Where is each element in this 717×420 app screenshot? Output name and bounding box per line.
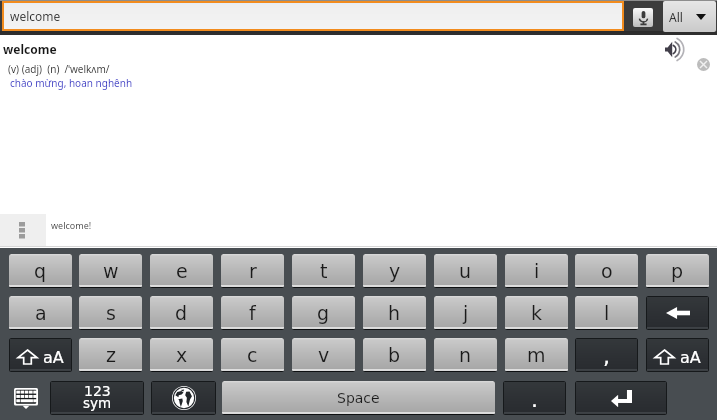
button[interactable]: Hide keyboard <box>4 381 48 415</box>
button[interactable]: x <box>150 338 213 371</box>
staticText: l <box>604 302 610 324</box>
other: Switch language <box>172 386 196 410</box>
button[interactable]: Switch language <box>152 382 215 414</box>
button[interactable]: . <box>504 382 565 414</box>
button[interactable]: f <box>221 296 284 329</box>
button[interactable]: b <box>363 338 426 371</box>
button[interactable]: e <box>150 254 213 287</box>
button[interactable]: m <box>505 338 568 371</box>
staticText: b <box>388 344 401 366</box>
button[interactable]: aA <box>10 339 71 371</box>
button[interactable]: p <box>646 254 709 287</box>
staticText: welcome <box>10 8 61 24</box>
staticText: (v) (adj) (n) /ˈwelkʌm/ <box>8 62 110 76</box>
button[interactable]: j <box>434 296 497 329</box>
staticText: m <box>527 344 546 366</box>
staticText: y <box>389 260 401 282</box>
button[interactable]: s <box>79 296 142 329</box>
button[interactable]: w <box>79 254 142 287</box>
staticText: i <box>534 260 540 282</box>
staticText: , <box>603 344 610 370</box>
button[interactable]: Enter <box>576 382 666 414</box>
button[interactable]: , <box>576 339 637 371</box>
staticText: aA <box>680 348 701 367</box>
button[interactable]: 123 <box>51 382 143 414</box>
staticText: u <box>459 260 472 282</box>
button[interactable]: u <box>434 254 497 287</box>
staticText: s <box>106 302 116 324</box>
staticText: z <box>106 344 116 366</box>
button[interactable]: Voice search <box>633 8 653 27</box>
button[interactable]: n <box>434 338 497 371</box>
button[interactable]: h <box>363 296 426 329</box>
other: Backspace <box>666 307 690 319</box>
staticText: k <box>531 302 543 324</box>
button[interactable]: Clear <box>697 58 710 71</box>
staticText: n <box>459 344 472 366</box>
staticText: w <box>103 260 119 282</box>
staticText: d <box>175 302 188 324</box>
button[interactable]: d <box>150 296 213 329</box>
staticText: welcome <box>3 41 57 57</box>
button[interactable]: z <box>79 338 142 371</box>
staticText: o <box>601 260 613 282</box>
staticText: f <box>249 302 256 324</box>
button[interactable]: i <box>505 254 568 287</box>
staticText: . <box>531 387 538 413</box>
staticText: welcome! <box>51 219 92 231</box>
staticText: sym <box>83 395 112 411</box>
staticText: q <box>34 260 47 282</box>
staticText: h <box>388 302 401 324</box>
button[interactable]: k <box>505 296 568 329</box>
button[interactable]: q <box>9 254 72 287</box>
staticText: v <box>318 344 330 366</box>
button[interactable]: Pronounce <box>665 39 689 60</box>
staticText: j <box>463 302 469 324</box>
staticText: r <box>249 260 257 282</box>
staticText: chào mừng, hoan nghênh <box>10 76 133 90</box>
staticText: aA <box>43 348 64 367</box>
staticText: g <box>317 302 330 324</box>
button[interactable]: r <box>221 254 284 287</box>
staticText: All <box>669 9 683 25</box>
button[interactable]: Backspace <box>647 297 708 329</box>
button[interactable]: t <box>292 254 355 287</box>
staticText: t <box>320 260 328 282</box>
button[interactable]: o <box>575 254 638 287</box>
staticText: x <box>176 344 188 366</box>
button[interactable]: aA <box>647 339 708 371</box>
button[interactable]: More suggestions <box>0 214 46 246</box>
button[interactable]: g <box>292 296 355 329</box>
staticText: c <box>247 344 258 366</box>
button[interactable]: y <box>363 254 426 287</box>
button[interactable]: l <box>575 296 638 329</box>
button[interactable]: All <box>663 1 716 32</box>
button[interactable]: a <box>9 296 72 329</box>
button[interactable]: Space <box>222 381 495 414</box>
button[interactable]: welcome <box>4 3 622 29</box>
staticText: 123 <box>84 383 111 399</box>
staticText: a <box>35 302 47 324</box>
button[interactable]: v <box>292 338 355 371</box>
staticText: e <box>176 260 188 282</box>
button[interactable]: c <box>221 338 284 371</box>
staticText: Space <box>337 390 380 406</box>
other: Enter <box>611 390 632 408</box>
staticText: p <box>671 260 684 282</box>
